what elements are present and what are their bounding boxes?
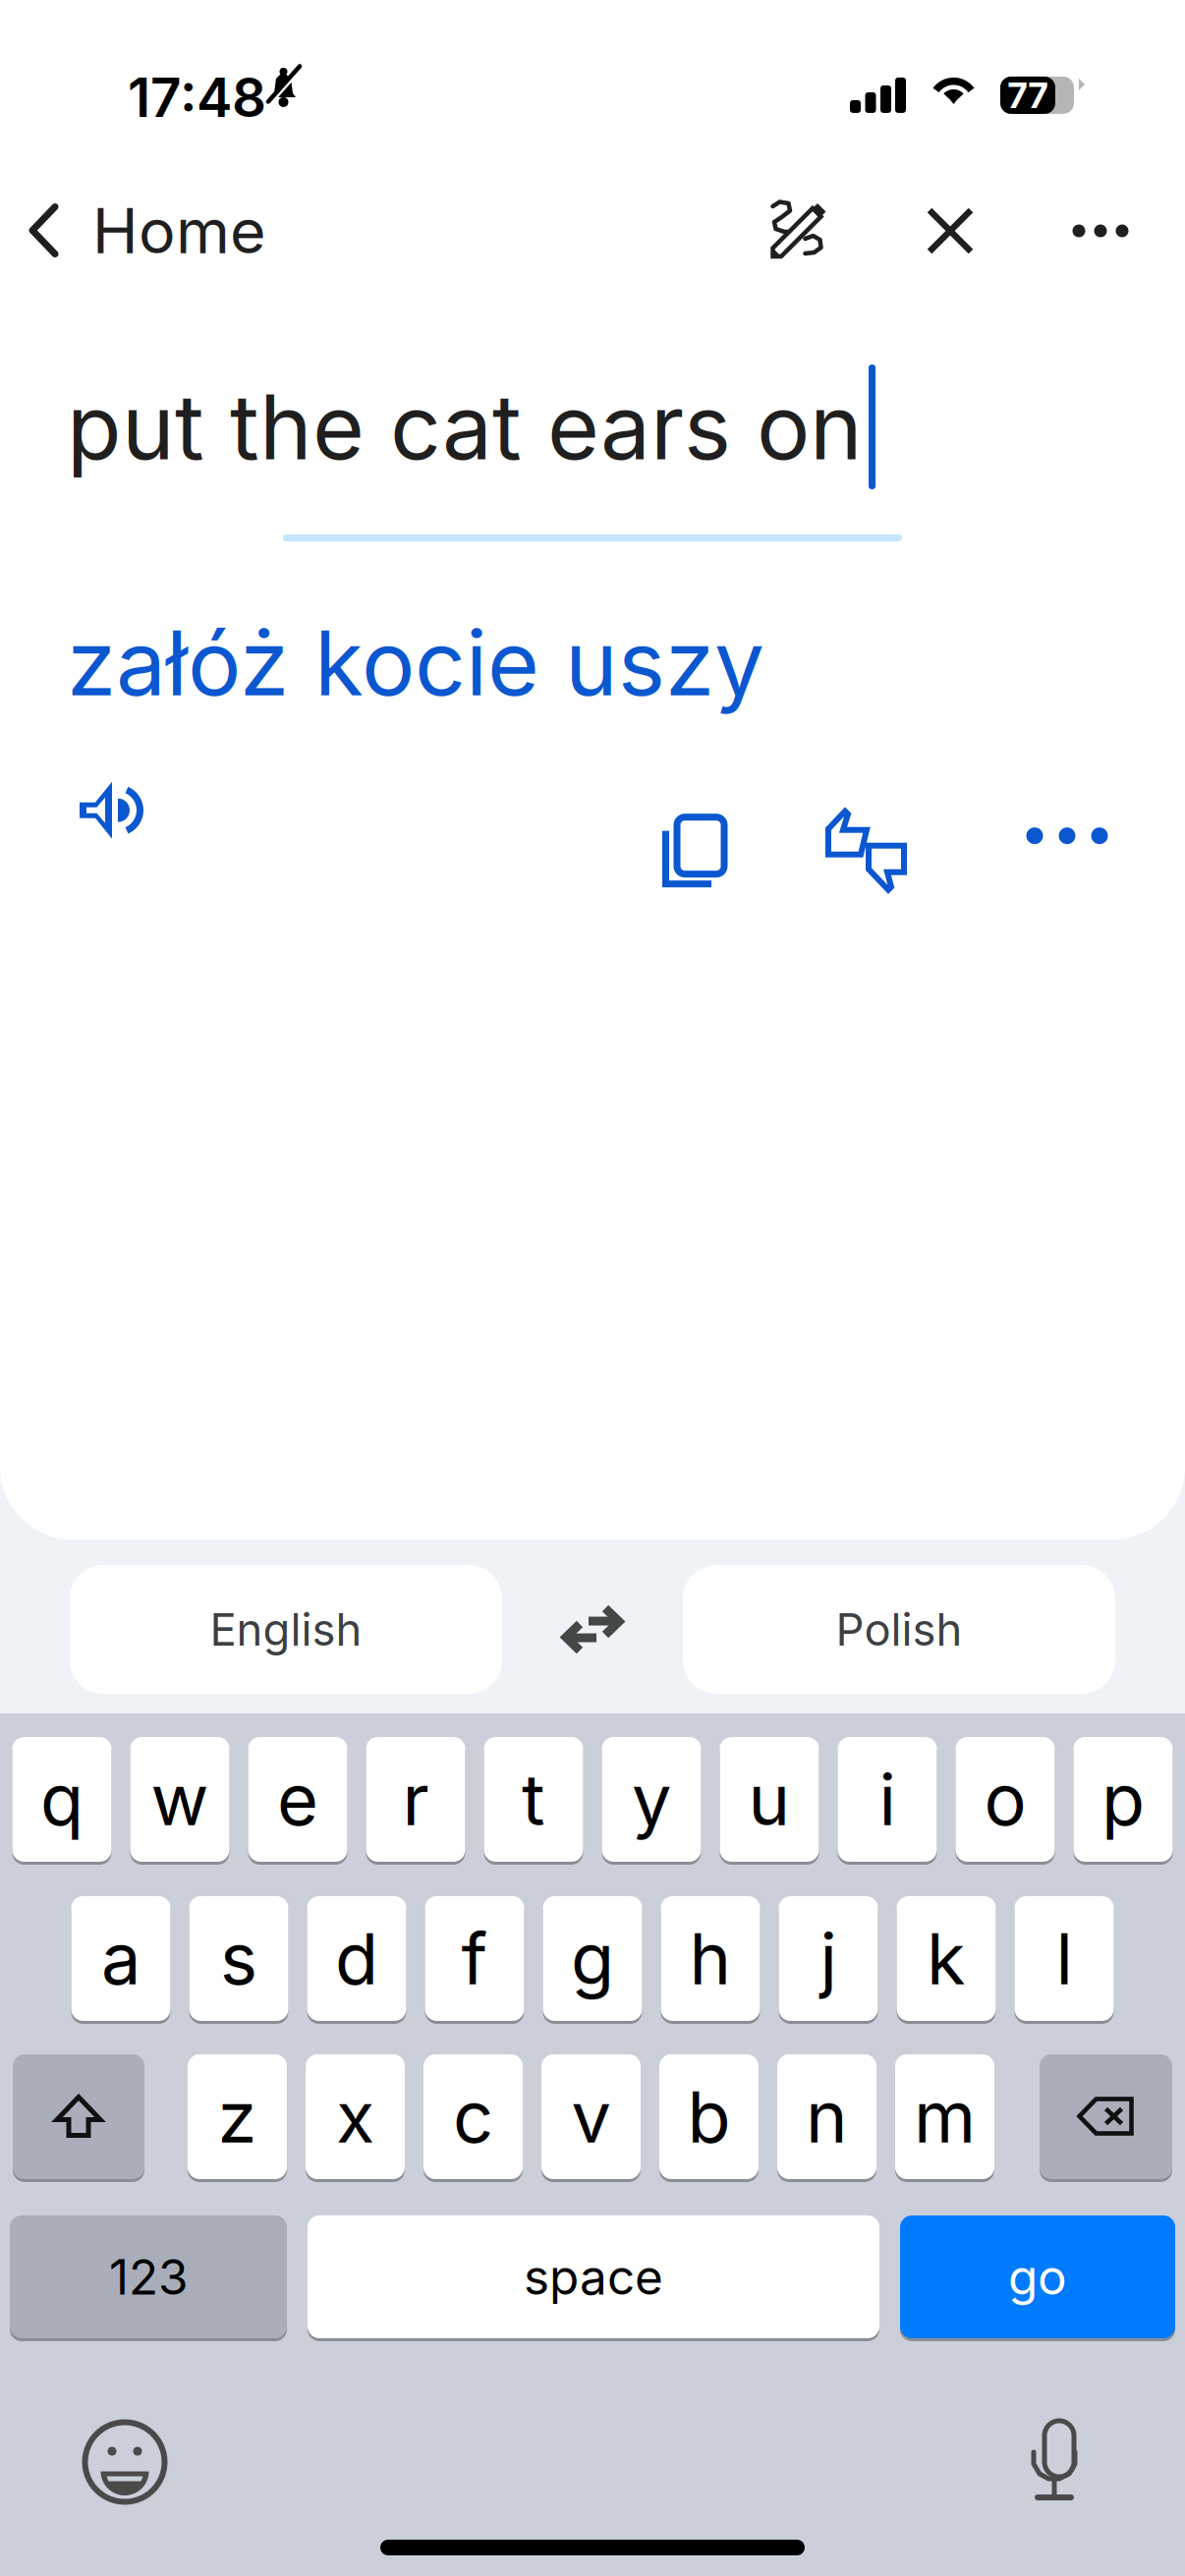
button[interactable]: k <box>897 1896 996 2021</box>
button[interactable]: o <box>956 1737 1055 1862</box>
button[interactable]: Dictation <box>1006 2413 1112 2511</box>
button[interactable]: d <box>307 1896 406 2021</box>
staticText: English <box>210 1602 362 1656</box>
staticText: b <box>687 2074 731 2159</box>
staticText: 17:48 <box>128 65 266 130</box>
staticText: j <box>820 1916 837 2001</box>
button[interactable]: x <box>306 2054 405 2179</box>
staticText: k <box>927 1916 966 2001</box>
button[interactable]: j <box>779 1896 878 2021</box>
staticText: o <box>984 1757 1026 1842</box>
button[interactable]: g <box>543 1896 642 2021</box>
button[interactable]: Handwriting <box>744 177 854 285</box>
button[interactable]: s <box>189 1896 288 2021</box>
button[interactable]: r <box>366 1737 465 1862</box>
staticText: put the cat ears on <box>67 373 863 481</box>
button[interactable]: Rate translation <box>796 783 902 885</box>
staticText: c <box>453 2074 493 2159</box>
staticText: go <box>1008 2248 1067 2306</box>
button[interactable]: y <box>602 1737 701 1862</box>
button[interactable]: Copy <box>641 801 747 904</box>
button[interactable]: More options <box>1045 177 1156 285</box>
staticText: załóż kocie uszy <box>67 609 764 717</box>
button[interactable]: More options <box>1014 785 1120 887</box>
staticText: Polish <box>836 1602 962 1656</box>
staticText: l <box>1056 1916 1072 2001</box>
button[interactable]: 123 <box>10 2215 287 2338</box>
staticText: d <box>335 1916 378 2001</box>
button[interactable]: h <box>661 1896 760 2021</box>
staticText: m <box>914 2074 976 2159</box>
button[interactable]: Swap languages <box>548 1585 637 1674</box>
staticText: p <box>1101 1757 1145 1842</box>
button[interactable]: w <box>130 1737 229 1862</box>
staticText: f <box>461 1916 488 2001</box>
staticText: g <box>571 1916 614 2001</box>
button[interactable]: Shift <box>13 2054 144 2179</box>
staticText: 123 <box>109 2248 188 2306</box>
button[interactable]: q <box>12 1737 112 1862</box>
button[interactable]: u <box>720 1737 819 1862</box>
button[interactable]: Delete <box>1040 2054 1172 2179</box>
staticText: h <box>689 1916 732 2001</box>
staticText: Home <box>92 194 266 268</box>
staticText: x <box>336 2074 374 2159</box>
staticText: q <box>40 1757 84 1842</box>
button[interactable]: e <box>248 1737 347 1862</box>
staticText: i <box>879 1757 896 1842</box>
staticText: z <box>218 2074 257 2159</box>
staticText: a <box>101 1916 141 2001</box>
button[interactable]: i <box>838 1737 937 1862</box>
staticText: n <box>806 2074 848 2159</box>
staticText: v <box>571 2074 611 2159</box>
button[interactable]: Polish <box>683 1565 1115 1694</box>
staticText: 77 <box>1008 74 1048 117</box>
button[interactable]: v <box>541 2054 641 2179</box>
staticText: t <box>522 1757 545 1842</box>
button[interactable]: go <box>900 2215 1175 2338</box>
button[interactable]: Emoji <box>72 2413 178 2511</box>
button[interactable]: c <box>423 2054 523 2179</box>
button[interactable]: English <box>70 1565 502 1694</box>
button[interactable]: p <box>1073 1737 1173 1862</box>
button[interactable]: space <box>308 2215 879 2338</box>
staticText: space <box>524 2248 663 2306</box>
staticText: e <box>277 1757 318 1842</box>
button[interactable]: n <box>777 2054 876 2179</box>
staticText: s <box>220 1916 257 2001</box>
button[interactable]: a <box>71 1896 170 2021</box>
button[interactable]: l <box>1015 1896 1114 2021</box>
button[interactable]: m <box>895 2054 994 2179</box>
button[interactable]: z <box>188 2054 287 2179</box>
staticText: w <box>151 1757 209 1842</box>
staticText: y <box>632 1757 671 1842</box>
staticText: r <box>402 1757 429 1842</box>
button[interactable]: Close <box>895 177 1005 285</box>
button[interactable]: t <box>484 1737 583 1862</box>
staticText: u <box>748 1757 790 1842</box>
button[interactable]: f <box>425 1896 524 2021</box>
button[interactable]: Listen <box>80 782 186 884</box>
button[interactable]: Home <box>0 177 286 285</box>
button[interactable]: b <box>659 2054 759 2179</box>
